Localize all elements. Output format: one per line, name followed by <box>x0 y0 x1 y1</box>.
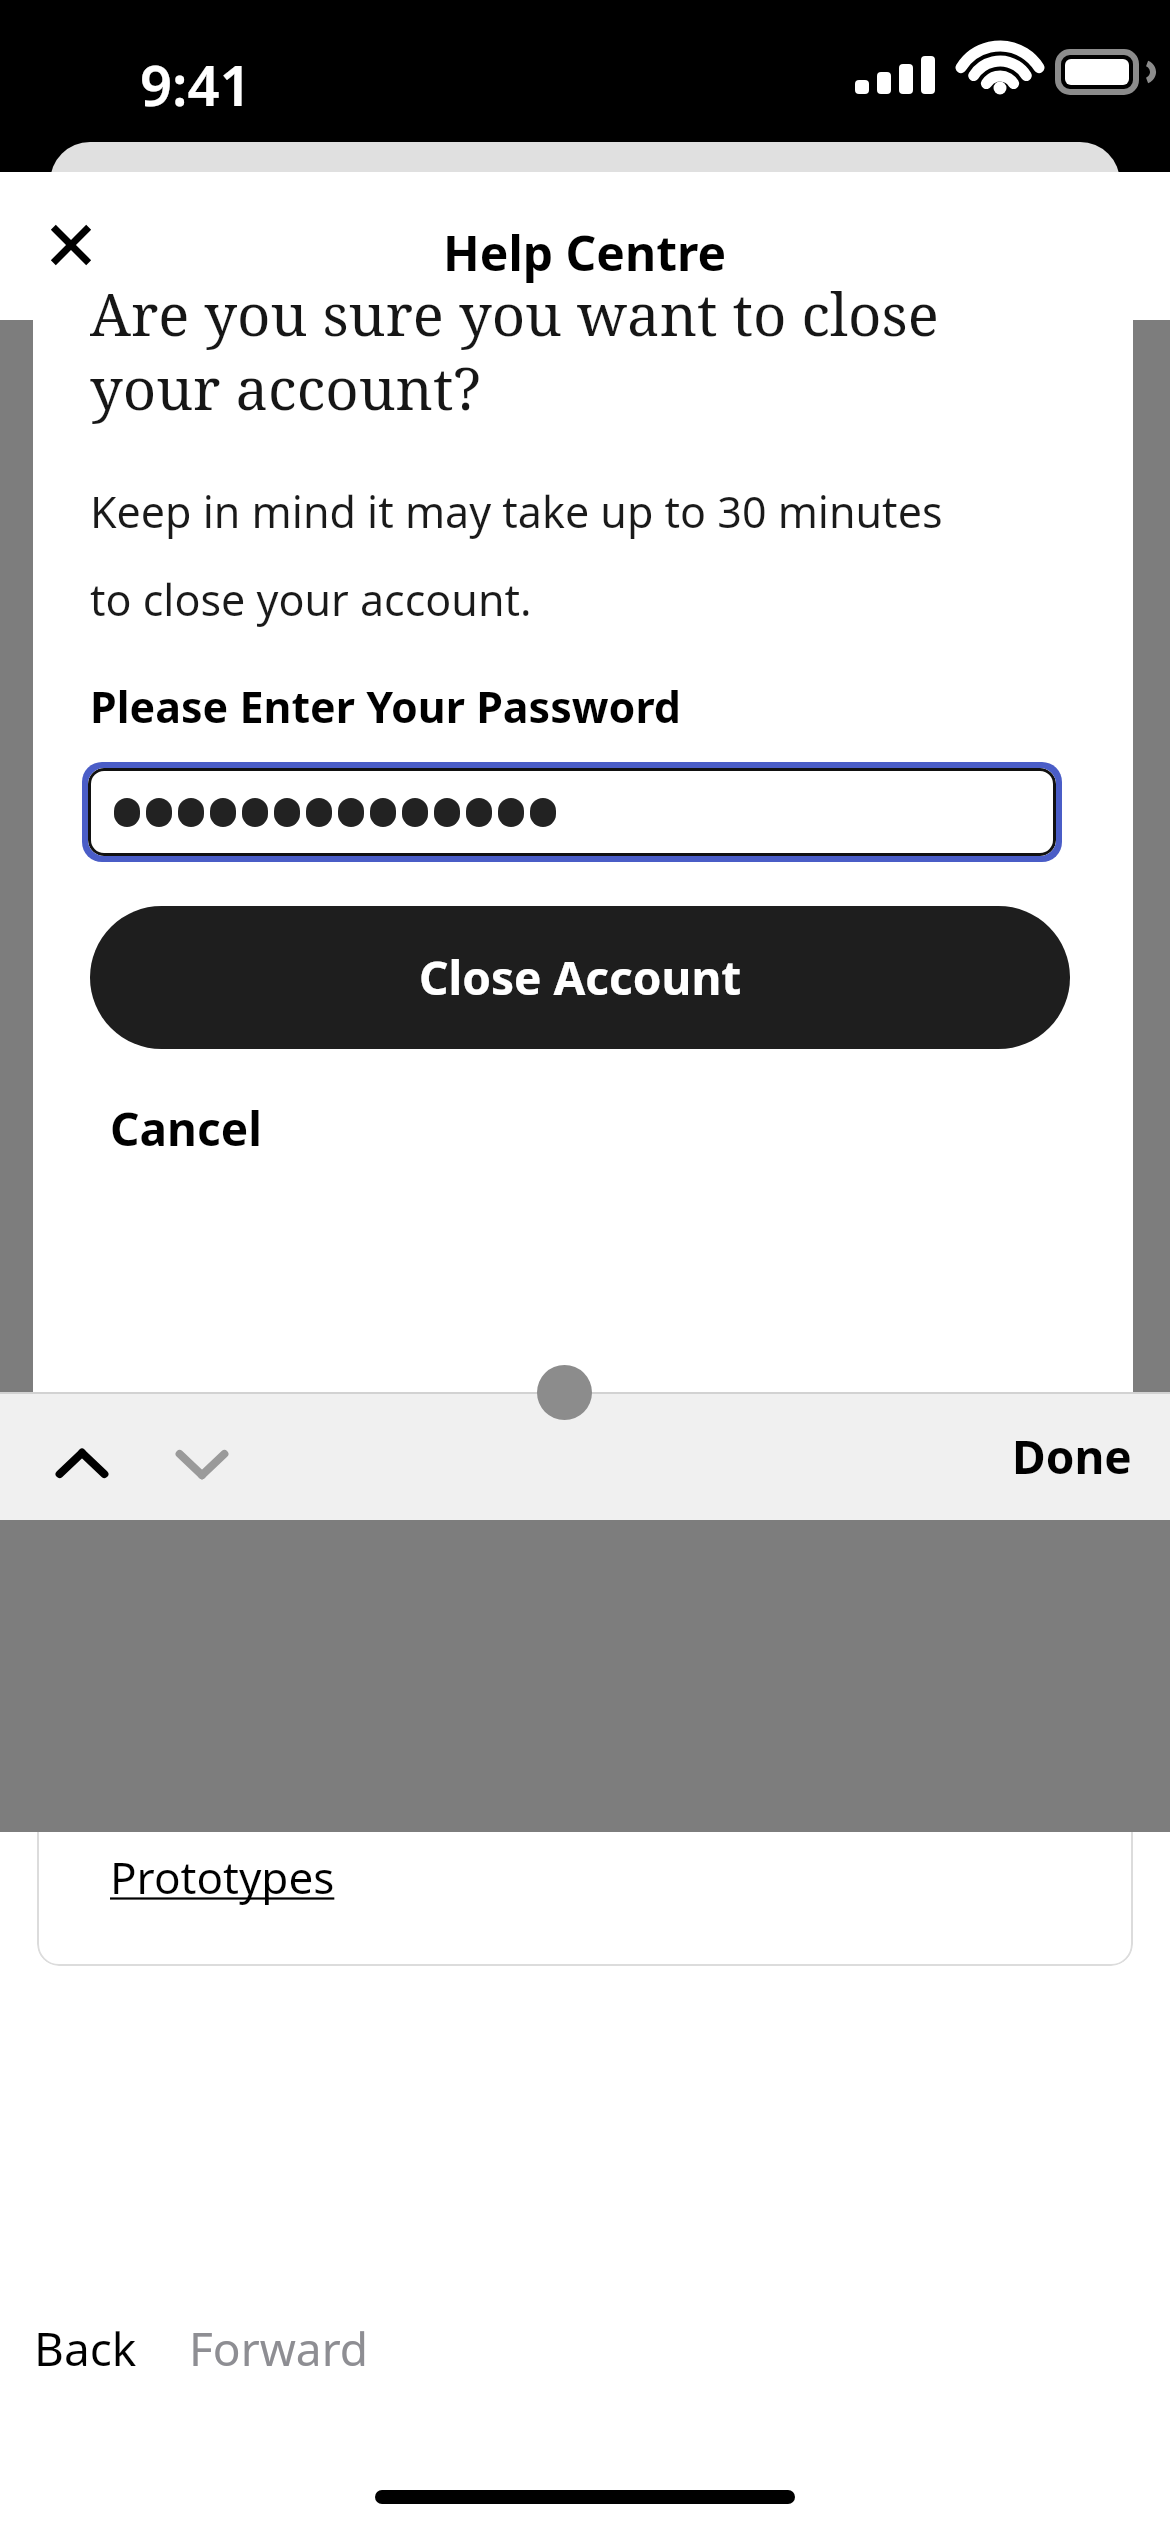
button[interactable] <box>88 768 1056 856</box>
staticText: Done <box>1012 1425 1132 1488</box>
button[interactable]: Cancel <box>110 1097 262 1160</box>
button[interactable]: Back <box>22 2303 149 2394</box>
button[interactable]: Done <box>1012 1425 1132 1488</box>
staticText: Please Enter Your Password <box>90 677 681 736</box>
staticText: 9:41 <box>140 46 252 122</box>
button[interactable]: Previous field <box>24 1406 140 1522</box>
button[interactable]: Forward <box>177 2303 381 2394</box>
staticText: Close Account <box>419 946 742 1009</box>
staticText: Are you sure you want to close your acco… <box>90 274 939 424</box>
button[interactable]: Next field <box>144 1406 260 1522</box>
staticText: Forward <box>189 2317 369 2380</box>
staticText: Cancel <box>110 1097 262 1160</box>
button[interactable]: Prototypes <box>110 1847 335 1907</box>
staticText: Keep in mind it may take up to 30 minute… <box>90 482 943 629</box>
staticText: Help Centre <box>443 220 727 285</box>
staticText: Prototypes <box>110 1847 335 1907</box>
button[interactable]: Close Account <box>90 906 1070 1049</box>
staticText: Back <box>34 2317 137 2380</box>
button[interactable]: Close <box>26 200 116 290</box>
